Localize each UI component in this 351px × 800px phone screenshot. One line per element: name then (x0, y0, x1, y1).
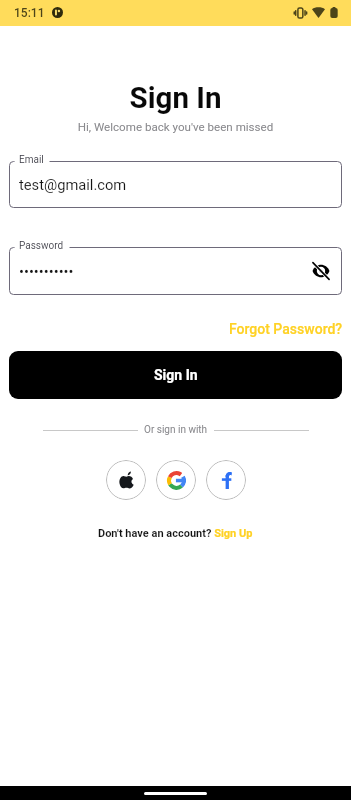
button[interactable]: Sign in with Google (156, 460, 196, 500)
button[interactable]: Forgot Password? (229, 321, 343, 337)
button[interactable]: Don't have an account? Sign Up (98, 527, 253, 540)
staticText: Sign In (154, 367, 198, 383)
staticText: test@gmail.com (19, 176, 127, 193)
staticText: Sign In (0, 81, 351, 116)
staticText: 15:11 (14, 6, 45, 20)
staticText: Or sign in with (144, 424, 208, 436)
staticText: Email (19, 154, 44, 166)
staticText: ••••••••••• (19, 263, 74, 280)
button[interactable]: Toggle password visibility (309, 259, 333, 283)
button[interactable]: Sign in with Apple (106, 460, 146, 500)
button[interactable]: Sign in with Facebook (206, 460, 246, 500)
button[interactable]: Sign In (9, 351, 342, 399)
staticText: Password (19, 240, 64, 252)
staticText: Hi, Welcome back you've been missed (0, 120, 351, 134)
